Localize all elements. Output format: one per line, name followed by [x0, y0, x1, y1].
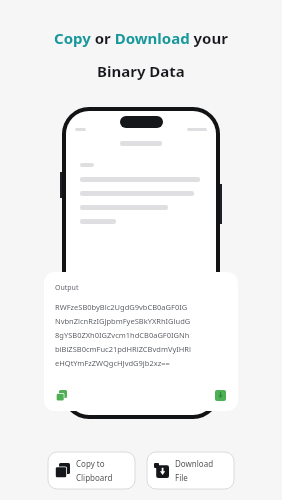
- staticText: Copy or Download your: [54, 28, 228, 48]
- button[interactable]: Copy to: [48, 452, 135, 489]
- staticText: 8gYSB0ZXh0IGZvcm1hdCB0aGF0IGNh: [55, 330, 190, 340]
- button[interactable]: Download: [147, 452, 234, 489]
- button[interactable]: Download output: [214, 389, 227, 402]
- button[interactable]: Copy output: [55, 389, 68, 402]
- staticText: NvbnZlcnRzIGJpbmFyeSBkYXRhIGludG: [55, 316, 191, 326]
- staticText: RWFzeSB0byBlc2UgdG9vbCB0aGF0IG: [55, 302, 188, 312]
- staticText: File: [175, 472, 188, 483]
- staticText: Binary Data: [97, 61, 185, 81]
- staticText: Clipboard: [76, 472, 113, 483]
- staticText: eHQtYmFzZWQgcHJvdG9jb2xz==: [55, 358, 170, 368]
- staticText: Output: [55, 283, 79, 293]
- staticText: Download: [175, 458, 214, 469]
- staticText: biBiZSB0cmFuc21pdHRlZCBvdmVyIHRl: [55, 344, 191, 354]
- staticText: Copy to: [76, 458, 105, 469]
